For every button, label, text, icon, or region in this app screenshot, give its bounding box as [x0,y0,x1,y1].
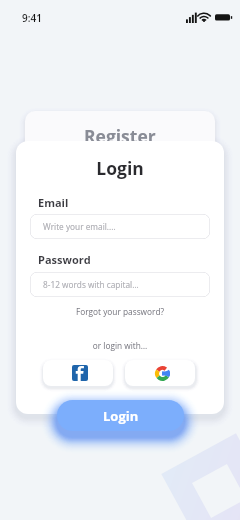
staticText: 8-12 words with capital... [43,279,139,290]
button[interactable]: Login [57,400,184,431]
staticText: Register [84,124,156,148]
staticText: Email [38,195,69,210]
button[interactable]: Forgot your password? [16,306,224,317]
staticText: 9:41 [22,11,42,25]
staticText: Login [16,156,224,180]
staticText: Write your email.... [43,221,116,232]
button[interactable]: Sign in with Facebook [43,360,113,386]
button[interactable]: Register [25,111,215,156]
button[interactable]: Write your email.... [30,214,210,239]
staticText: or login with… [16,340,224,351]
staticText: Login [103,407,139,425]
button[interactable]: 8-12 words with capital... [30,272,210,297]
button[interactable]: Sign in with Google [125,360,195,386]
staticText: Password [38,252,91,267]
